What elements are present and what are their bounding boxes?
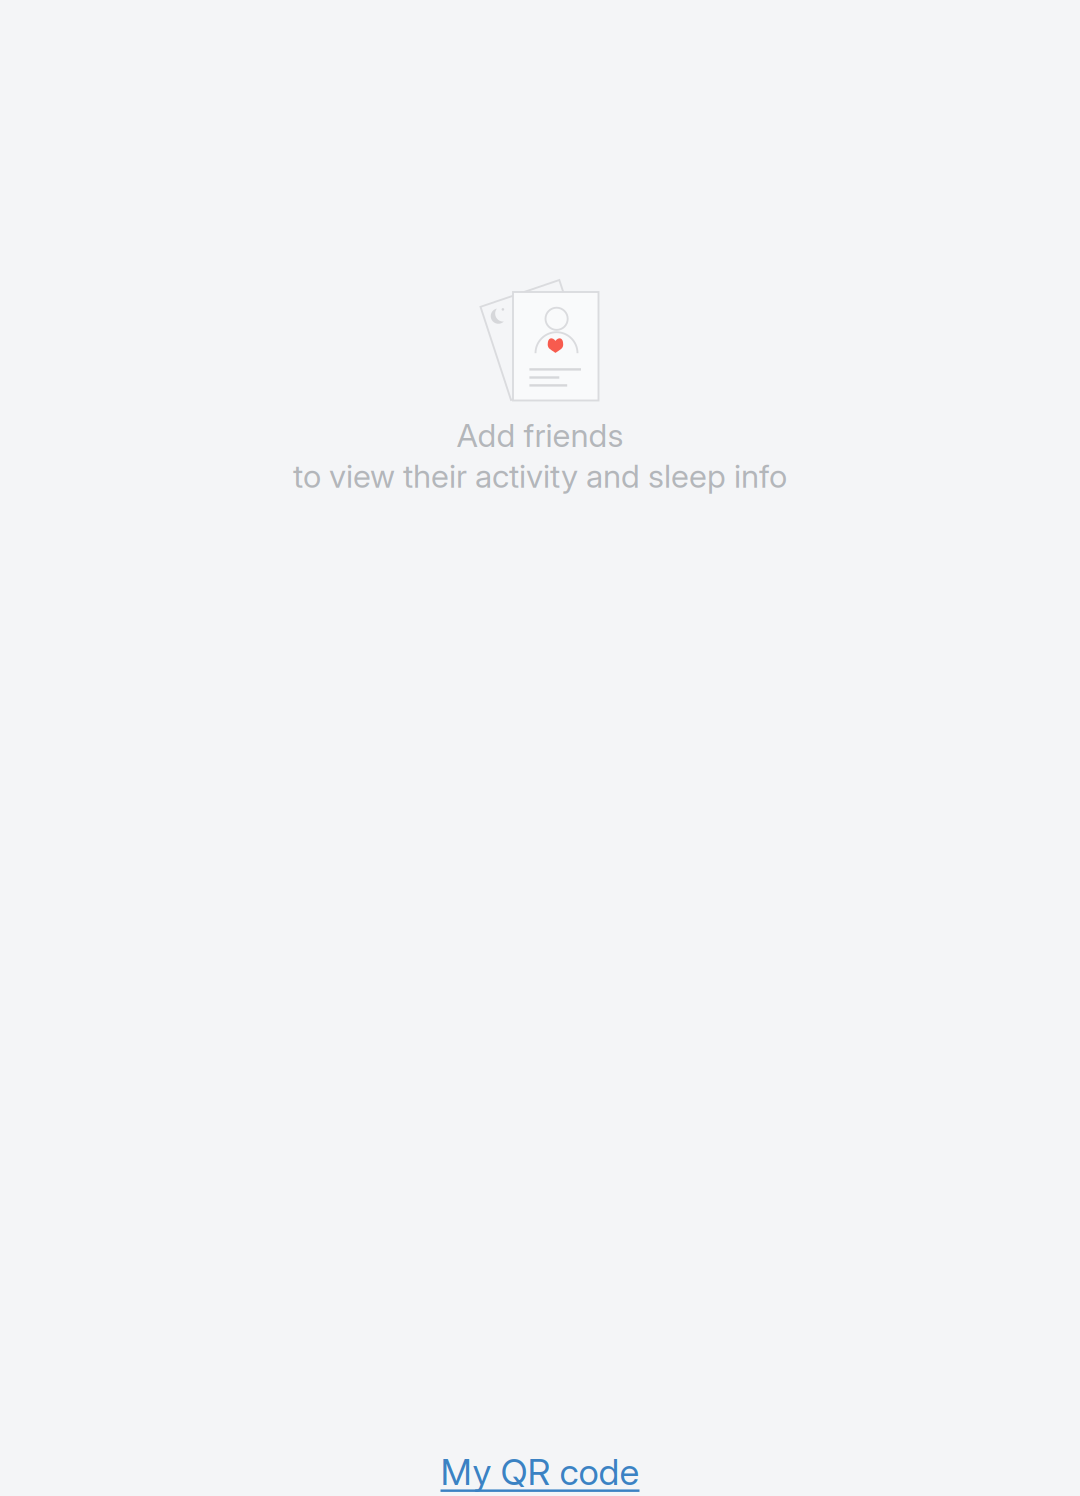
button[interactable]: My QR code xyxy=(0,1449,1080,1495)
staticText: Add friends xyxy=(456,416,623,455)
staticText: My QR code xyxy=(440,1450,639,1494)
staticText: to view their activity and sleep info xyxy=(293,457,787,495)
